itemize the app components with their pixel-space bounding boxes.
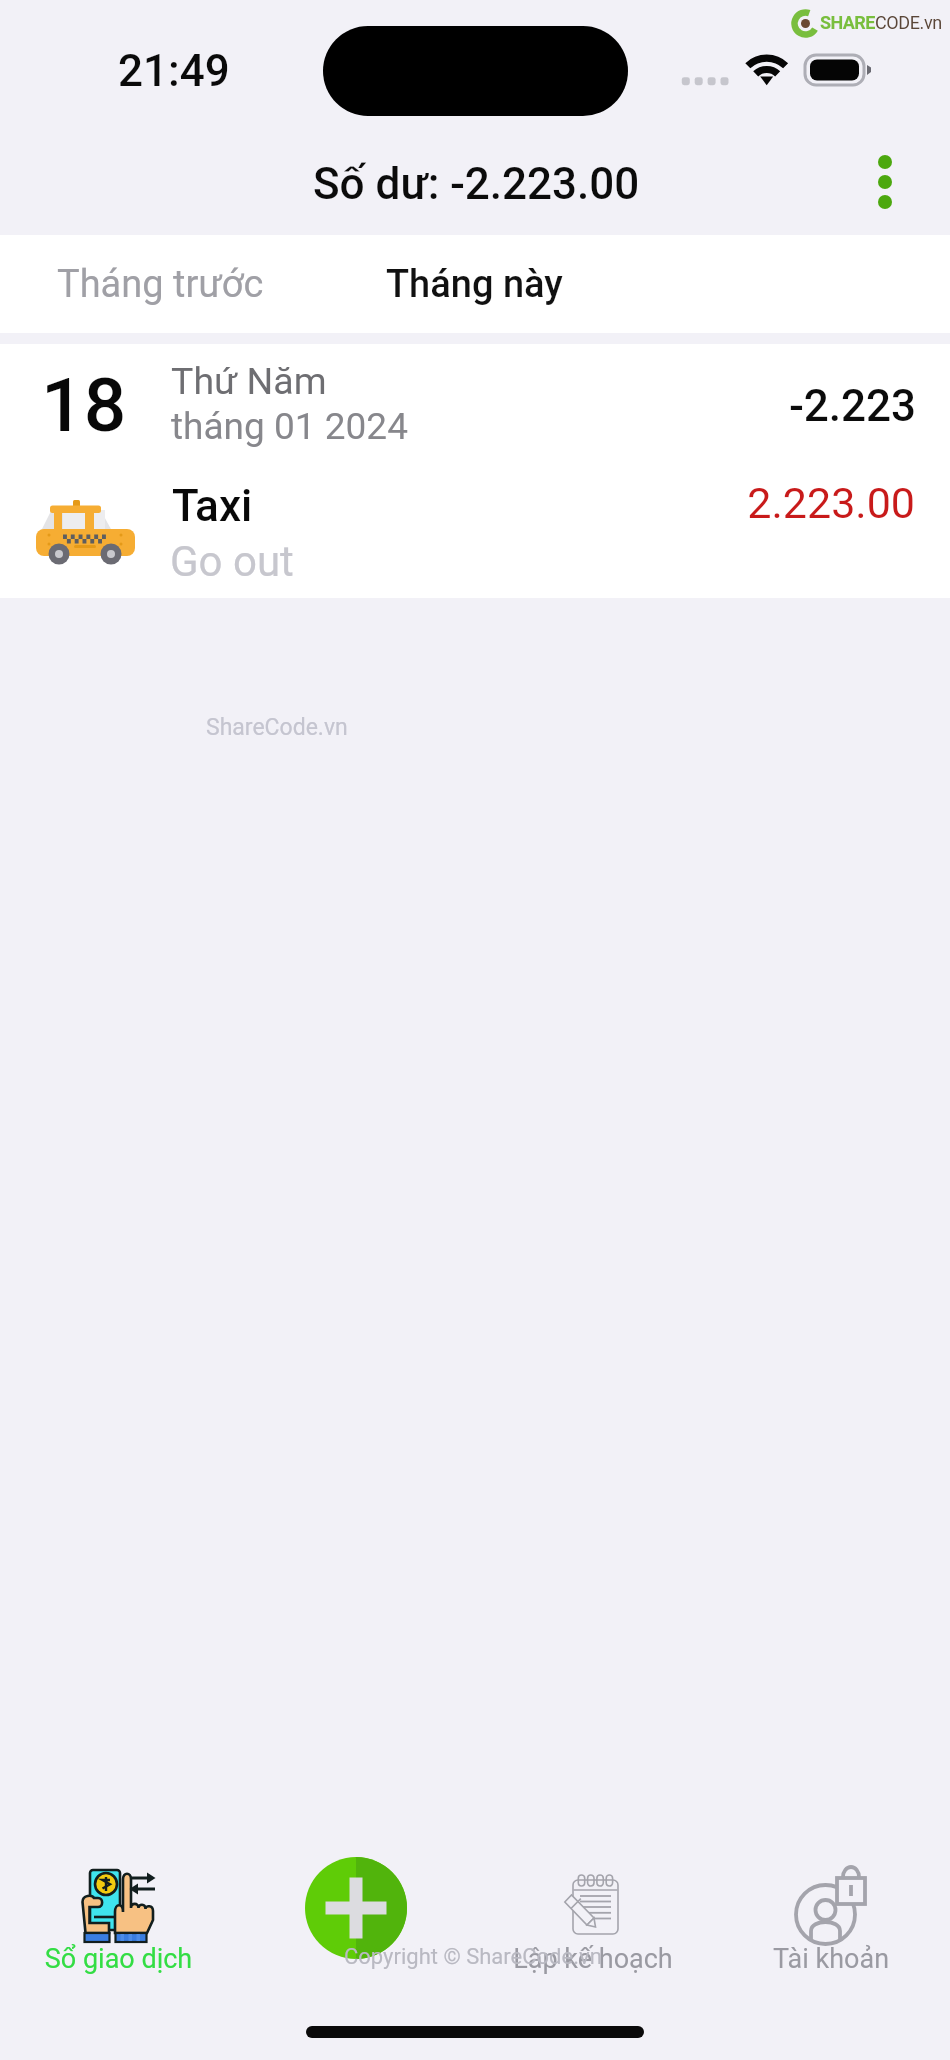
staticText: Go out — [170, 537, 294, 586]
staticText: Lập kế hoạch — [474, 1943, 712, 1975]
button[interactable]: More options — [845, 138, 925, 218]
staticText: Tài khoản — [712, 1943, 950, 1975]
button[interactable]: Plan — [474, 1858, 712, 1988]
staticText: Tháng trước — [57, 262, 264, 307]
staticText: tháng 01 2024 — [171, 405, 408, 448]
staticText: Taxi — [172, 480, 253, 532]
staticText: Sổ giao dịch — [0, 1943, 237, 1975]
button[interactable]: Tháng này — [314, 235, 634, 333]
staticText: Thứ Năm — [171, 359, 327, 403]
staticText: -2.223 — [0, 380, 916, 432]
staticText: Tháng này — [386, 262, 563, 307]
staticText: ShareCode.vn — [206, 714, 348, 741]
staticText: 2.223.00 — [0, 478, 915, 528]
button[interactable]: 18 — [0, 344, 950, 464]
staticText: 18 — [41, 361, 127, 449]
button[interactable]: Tháng trước — [0, 235, 320, 333]
button[interactable]: Account — [712, 1858, 950, 1988]
staticText: SHARE — [820, 12, 875, 33]
button[interactable]: Taxi — [0, 464, 950, 598]
staticText: Copyright © ShareCode.vn — [344, 1944, 602, 1970]
button[interactable]: Add transaction — [237, 1858, 474, 1988]
staticText: Số dư: -2.223.00 — [313, 158, 640, 210]
staticText: 21:49 — [118, 45, 230, 97]
staticText: CODE.vn — [875, 12, 942, 33]
button[interactable]: Transactions — [0, 1858, 237, 1988]
